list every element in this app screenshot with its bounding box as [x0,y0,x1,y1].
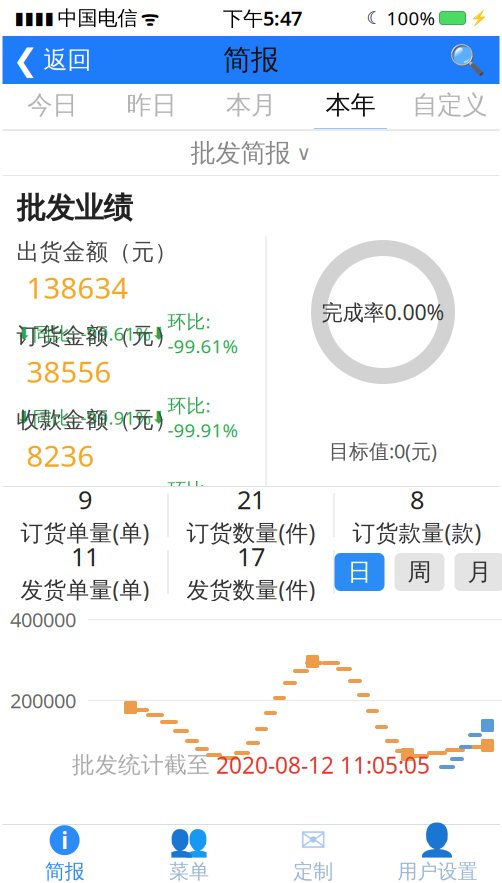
staticText: 2020-08-12 11:05:05 [216,750,430,780]
button[interactable]: 👤 [375,825,499,883]
button[interactable]: ❮ [2,37,91,83]
staticText: ᯤ [140,5,158,31]
button[interactable]: 今日 [2,84,102,129]
staticText: 发货数量(件) [186,574,315,604]
staticText: 138634 [26,268,128,307]
button[interactable]: 月 [454,553,502,591]
staticText: ▮▮▮▮ [14,8,54,28]
staticText: 菜单 [169,859,209,883]
staticText: 17 [237,540,265,573]
staticText: 订货单量(单) [20,517,149,547]
staticText: 发货单量(单) [20,574,149,604]
staticText: 批发统计截至 [72,751,210,779]
staticText: 自定义 [412,89,487,120]
staticText: 9 [78,483,92,516]
staticText: 👥 [169,822,209,858]
staticText: 日 [347,557,371,587]
staticText: 100% [386,6,435,30]
staticText: ✉ [300,822,327,858]
staticText: 👤 [417,822,457,858]
staticText: ⬇ [16,324,31,343]
staticText: 订货金额（元） [16,322,177,350]
staticText: 8 [410,483,424,516]
button[interactable]: 昨日 [102,84,201,129]
staticText: ⬇ [16,408,31,427]
staticText: ⬇ [151,408,166,427]
staticText: 38556 [26,352,111,391]
button[interactable]: 本月 [201,84,301,129]
staticText: ☾ [366,8,382,28]
staticText: 昨日 [127,89,177,120]
staticText: ❮ [12,43,38,77]
button[interactable]: 自定义 [400,84,499,129]
staticText: 周 [407,557,431,587]
button[interactable]: 👥 [127,825,251,883]
button[interactable]: 搜索 [448,37,499,83]
staticText: 同比: -99.61% [32,321,151,346]
staticText: 出货金额（元） [16,238,177,266]
staticText: 21 [237,483,265,516]
staticText: 环比: -99.98% [167,477,238,526]
staticText: 下午5:47 [223,5,302,31]
staticText: 🔍 [448,43,485,77]
staticText: 收款金额（元） [16,406,177,434]
staticText: 同比: -99.98% [32,489,151,514]
staticText: ⚡ [469,10,487,26]
staticText: 同比: -99.91% [32,405,151,430]
staticText: 中国电信 [57,6,137,30]
staticText: 月 [467,557,491,587]
button[interactable]: i [2,825,127,883]
staticText: 批发简报 [190,137,290,168]
staticText: 本年 [325,89,375,120]
staticText: ∨ [296,142,311,164]
staticText: 定制 [293,859,333,883]
button[interactable]: 周 [394,553,444,591]
staticText: 8236 [26,436,94,475]
staticText: 简报 [45,859,85,883]
button[interactable]: ✉ [251,825,375,883]
button[interactable]: 本年 [301,84,400,129]
staticText: i [61,825,68,855]
staticText: 环比: -99.61% [167,309,238,358]
staticText: ⬇ [151,324,166,343]
staticText: 目标值:0(元) [329,437,437,464]
button[interactable]: 日 [334,553,384,591]
staticText: 批发业绩 [16,190,132,226]
staticText: 200000 [10,687,76,714]
staticText: 11 [71,540,99,573]
staticText: 本月 [226,89,276,120]
staticText: 返回 [43,45,91,75]
staticText: 用户设置 [397,859,477,883]
button[interactable]: 批发简报 [2,130,499,176]
staticText: 完成率0.00% [321,298,444,326]
staticText: 简报 [223,43,279,77]
staticText: 订货数量(件) [186,517,315,547]
staticText: 订货款量(款) [352,517,481,547]
staticText: 环比: -99.91% [167,393,238,442]
staticText: 400000 [10,606,76,633]
staticText: 今日 [27,89,77,120]
